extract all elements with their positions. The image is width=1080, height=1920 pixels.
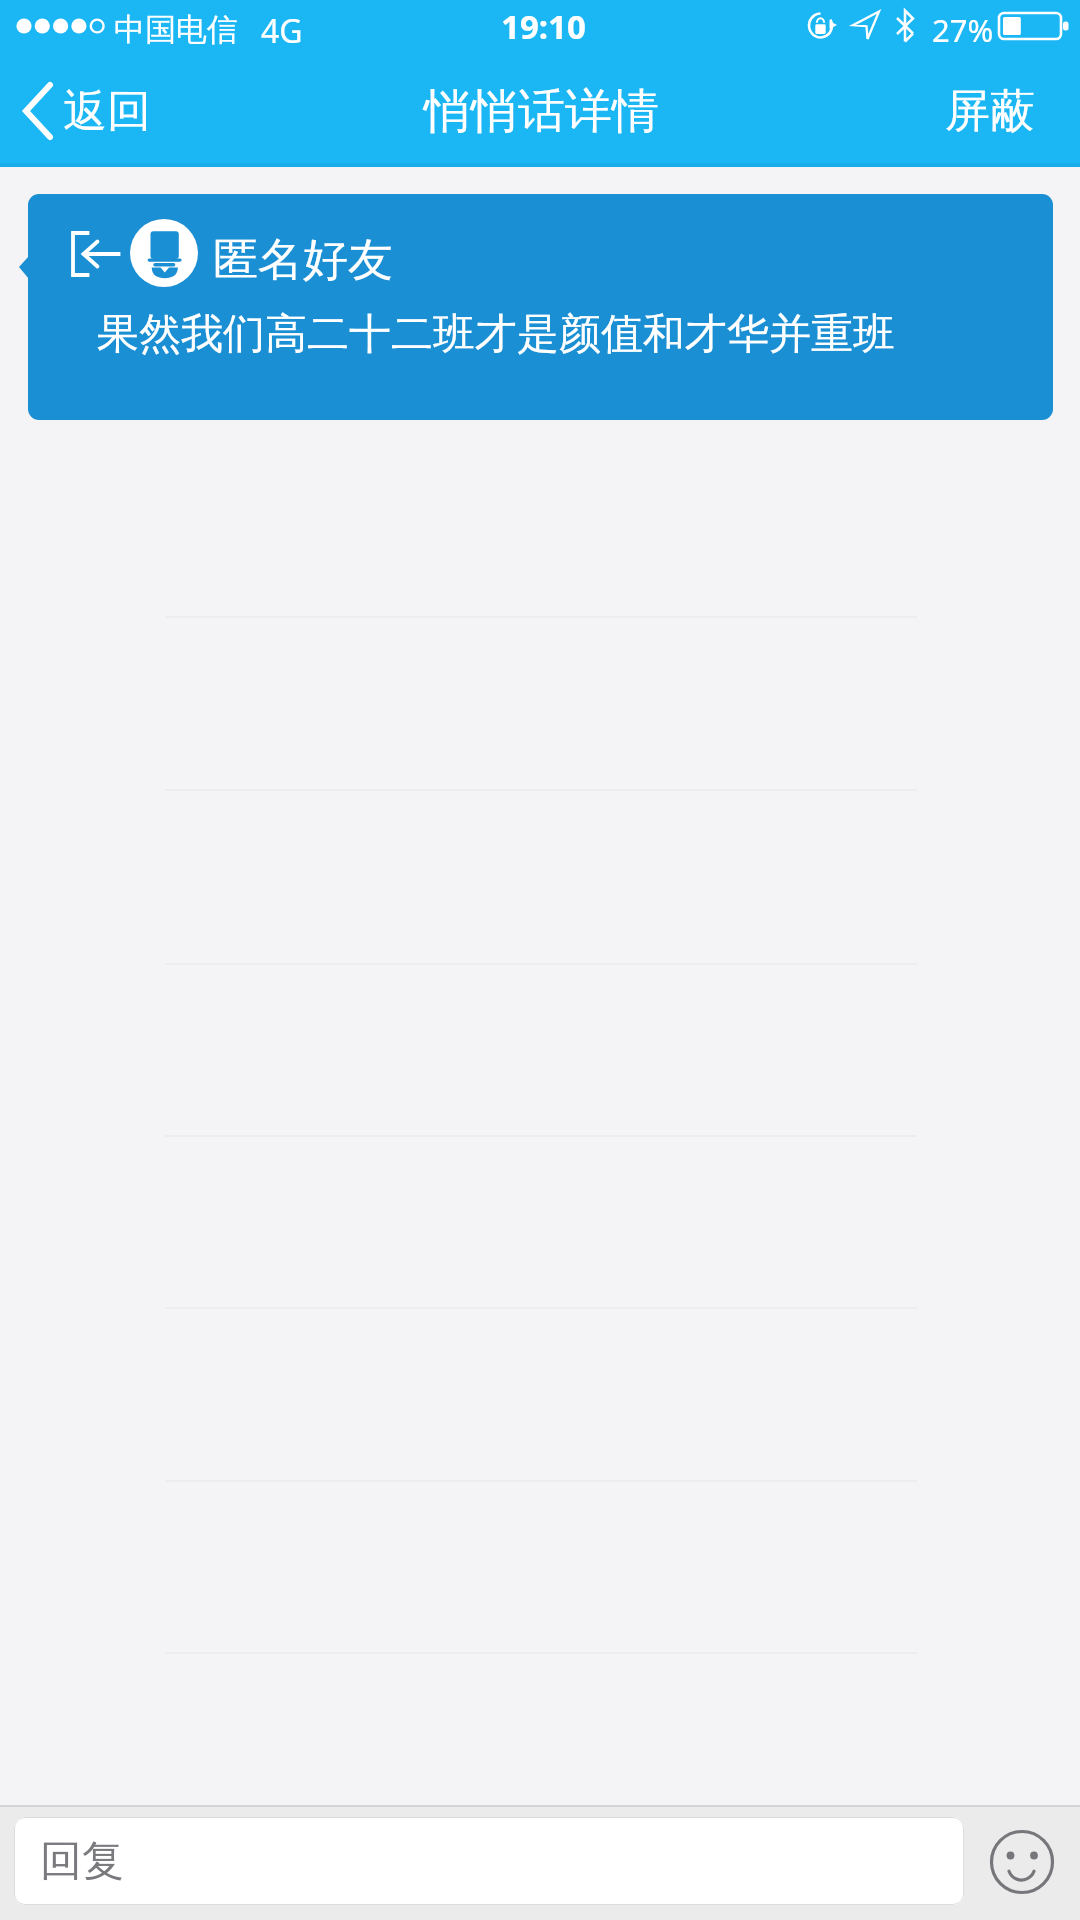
button[interactable]: 返回 [0, 55, 173, 167]
staticText: 果然我们高二十二班才是颜值和才华并重班 [97, 308, 895, 361]
button[interactable]: 匿名好友 [28, 194, 1053, 420]
staticText: 19:10 [501, 4, 586, 49]
staticText: 悄悄话详情 [424, 82, 659, 141]
staticText: 4G [261, 9, 303, 53]
staticText: 匿名好友 [213, 232, 393, 289]
button[interactable]: Emoji [982, 1822, 1062, 1902]
button[interactable]: 回复 [14, 1817, 964, 1905]
staticText: 中国电信 [114, 10, 238, 49]
staticText: 屏蔽 [945, 83, 1035, 140]
staticText: 回复 [40, 1835, 124, 1888]
staticText: 返回 [63, 84, 151, 139]
button[interactable]: 屏蔽 [921, 55, 1080, 167]
staticText: 27% [932, 9, 994, 51]
